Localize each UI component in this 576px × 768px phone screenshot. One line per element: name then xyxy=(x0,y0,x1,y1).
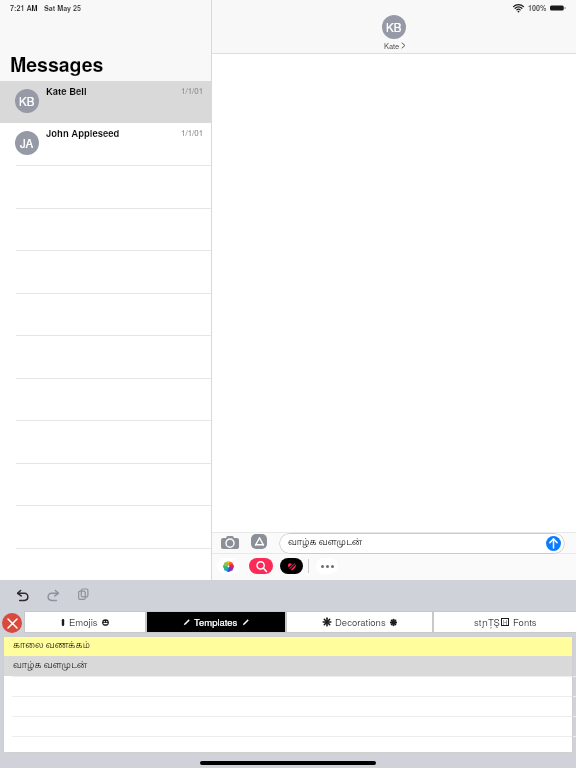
button[interactable]: காலை வணக்கம் xyxy=(3,636,573,656)
staticText: காலை வணக்கம் xyxy=(13,641,90,652)
staticText: KB xyxy=(19,93,35,109)
button[interactable]: Paste xyxy=(78,589,89,600)
button[interactable]: Emojis xyxy=(24,611,146,633)
staticText: வாழ்க வளமுடன் xyxy=(13,661,88,672)
button[interactable] xyxy=(3,696,573,716)
button[interactable]: App Store xyxy=(251,534,267,549)
staticText: Templates xyxy=(194,615,238,629)
staticText: 7:21 AM xyxy=(10,3,38,13)
button[interactable]: KB xyxy=(0,81,211,123)
button[interactable]: KB xyxy=(382,15,406,39)
button[interactable]: Redo xyxy=(47,589,59,601)
staticText: 100% xyxy=(528,3,547,13)
button[interactable]: வாழ்க வளமுடன் xyxy=(279,533,565,554)
staticText: Fonts xyxy=(513,615,537,629)
button[interactable] xyxy=(3,736,573,753)
button[interactable]: More xyxy=(316,558,338,574)
staticText: 1/1/01 xyxy=(181,85,204,96)
button[interactable] xyxy=(3,676,573,696)
staticText: ɲ xyxy=(482,616,488,629)
staticText: Messages xyxy=(10,50,104,78)
staticText: 1/1/01 xyxy=(181,127,204,138)
button[interactable]: வாழ்க வளமுடன் xyxy=(3,656,573,676)
staticText: JA xyxy=(20,135,34,151)
staticText: Kate Bell xyxy=(46,84,87,98)
button[interactable]: Undo xyxy=(17,589,29,601)
button[interactable]: Send xyxy=(546,536,561,551)
staticText: John Appleseed xyxy=(46,126,120,140)
staticText: ȚŞ xyxy=(488,615,500,629)
staticText: st xyxy=(474,615,482,629)
button[interactable]: st xyxy=(433,611,576,633)
button[interactable]: Templates xyxy=(146,611,286,633)
staticText: KB xyxy=(386,19,402,35)
button[interactable] xyxy=(217,558,239,574)
staticText: Kate xyxy=(384,40,400,51)
staticText: வாழ்க வளமுடன் xyxy=(288,538,363,549)
button[interactable]: Close xyxy=(2,613,22,633)
staticText: Decorations xyxy=(335,615,386,629)
staticText: Emojis xyxy=(69,615,98,629)
button[interactable]: Decorations xyxy=(286,611,433,633)
button[interactable]: JA xyxy=(0,123,211,165)
button[interactable]: Digital Touch xyxy=(280,558,303,574)
button[interactable] xyxy=(3,716,573,736)
staticText: H xyxy=(503,618,508,626)
button[interactable]: Camera xyxy=(221,536,239,549)
button[interactable]: Images xyxy=(249,558,273,574)
staticText: Sat May 25 xyxy=(44,3,82,13)
